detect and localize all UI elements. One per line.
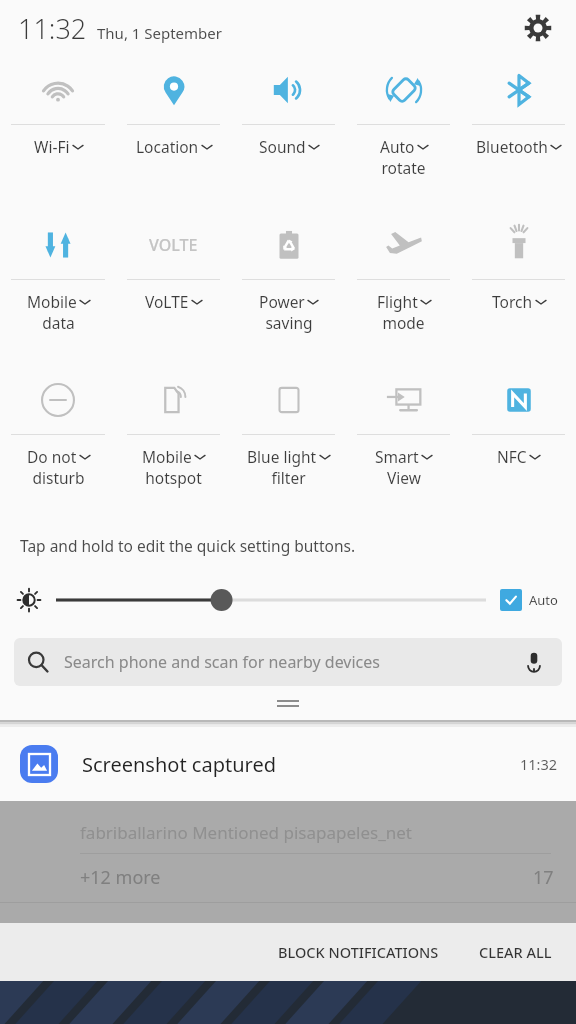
button[interactable]: VOLTE — [116, 211, 231, 366]
staticText: 17 — [533, 865, 554, 890]
staticText: Torch — [492, 291, 533, 312]
button[interactable]: NFC — [461, 366, 576, 521]
button[interactable] — [56, 586, 486, 614]
staticText: Screenshot captured — [82, 751, 276, 778]
staticText: 11:32 — [18, 10, 87, 47]
button[interactable]: Location — [116, 56, 231, 211]
button[interactable]: CLEAR ALL — [465, 932, 566, 972]
staticText: +12 more — [80, 865, 161, 890]
button[interactable]: Flight — [346, 211, 461, 366]
staticText: Bluetooth — [476, 136, 548, 157]
staticText: Location — [136, 136, 199, 157]
staticText: Auto — [529, 591, 558, 609]
button[interactable]: Search phone and scan for nearby devices — [14, 638, 562, 686]
staticText: CLEAR ALL — [479, 942, 552, 962]
staticText: 11:32 — [520, 754, 558, 774]
staticText: data — [42, 312, 75, 333]
button[interactable]: Wi-Fi — [0, 56, 116, 211]
staticText: Smart — [375, 446, 419, 467]
staticText: Power — [259, 291, 305, 312]
staticText: Flight — [377, 291, 418, 312]
button[interactable]: Smart — [346, 366, 461, 521]
staticText: Tap and hold to edit the quick setting b… — [20, 535, 356, 556]
button[interactable]: Do not — [0, 366, 116, 521]
staticText: mode — [382, 312, 425, 333]
staticText: VoLTE — [145, 291, 189, 312]
staticText: Wi-Fi — [34, 136, 70, 157]
staticText: BLOCK NOTIFICATIONS — [278, 942, 439, 962]
staticText: VOLTE — [149, 234, 198, 256]
staticText: Auto — [380, 136, 415, 157]
staticText: Thu, 1 September — [97, 23, 222, 43]
staticText: Mobile — [142, 446, 192, 467]
button[interactable]: Auto — [500, 589, 558, 611]
button[interactable]: Auto — [346, 56, 461, 211]
staticText: Sound — [259, 136, 306, 157]
staticText: rotate — [381, 157, 426, 178]
button[interactable]: Sound — [231, 56, 346, 211]
staticText: Mobile — [27, 291, 77, 312]
button[interactable]: Screenshot captured — [0, 727, 576, 801]
staticText: View — [387, 467, 421, 488]
staticText: Do not — [27, 446, 77, 467]
staticText: filter — [271, 467, 306, 488]
button[interactable]: Blue light — [231, 366, 346, 521]
staticText: hotspot — [145, 467, 202, 488]
staticText: disturb — [32, 467, 85, 488]
button[interactable]: Mobile — [116, 366, 231, 521]
button[interactable]: Power — [231, 211, 346, 366]
staticText: saving — [265, 312, 313, 333]
button[interactable]: Torch — [461, 211, 576, 366]
button[interactable]: BLOCK NOTIFICATIONS — [264, 932, 453, 972]
staticText: fabriballarino Mentioned pisapapeles_net — [80, 821, 412, 844]
button[interactable]: Voice search — [518, 646, 550, 678]
button[interactable]: Bluetooth — [461, 56, 576, 211]
staticText: Search phone and scan for nearby devices — [64, 651, 380, 673]
staticText: NFC — [497, 446, 527, 467]
staticText: Blue light — [247, 446, 317, 467]
button[interactable]: Mobile — [0, 211, 116, 366]
button[interactable]: Settings — [516, 6, 560, 50]
